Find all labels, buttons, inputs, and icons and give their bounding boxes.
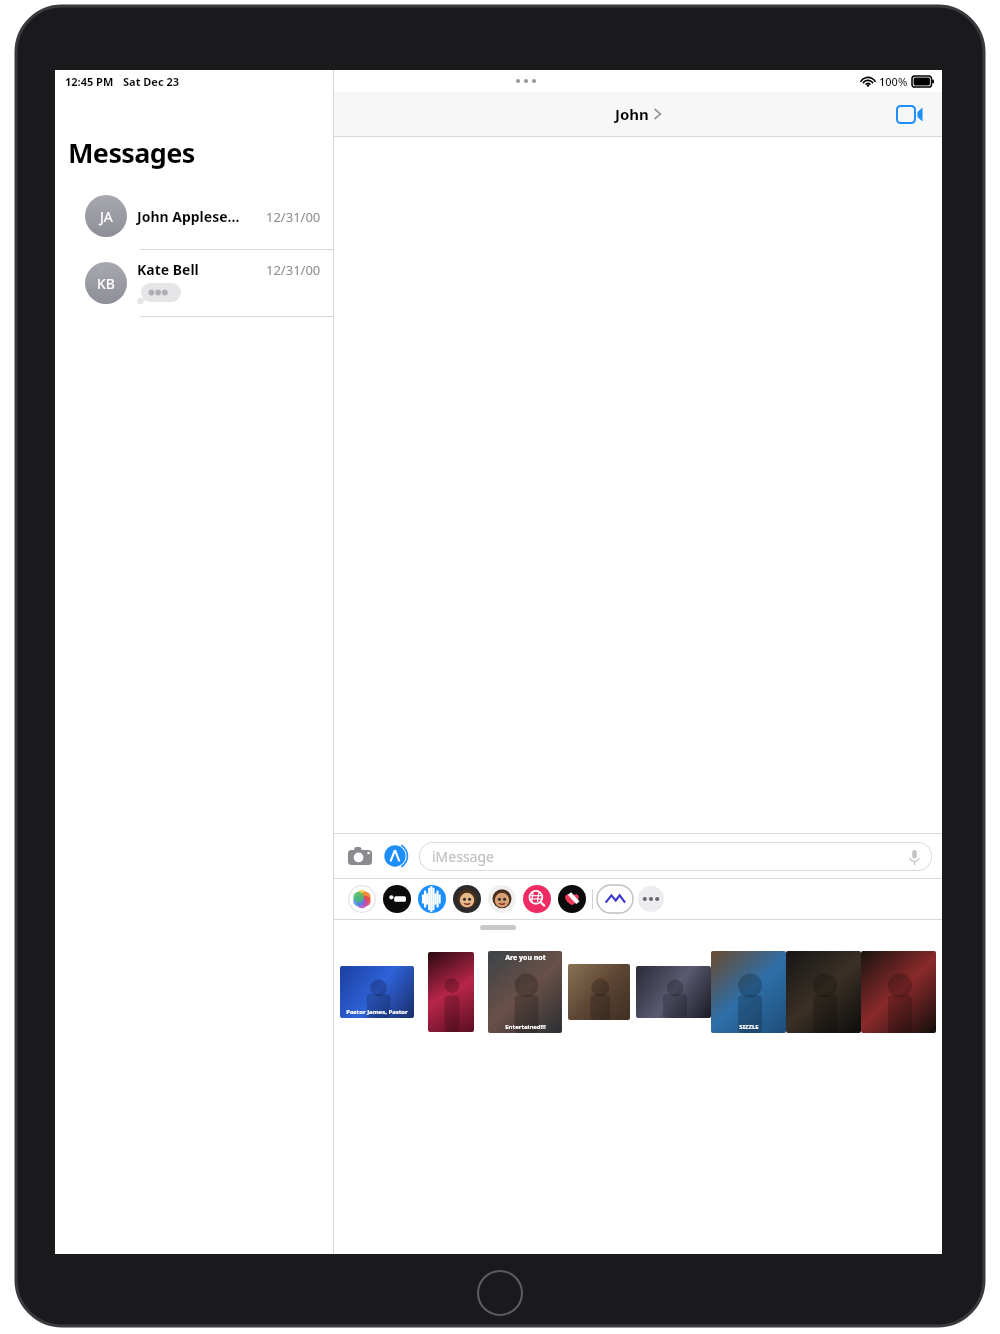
staticText: 12/31/00 [266,261,321,279]
staticText: Are you not [505,953,546,963]
staticText: Pastor James, Pastor James [340,1008,414,1016]
button[interactable]: Mountain app [597,885,633,913]
staticText: John Applese... [137,207,266,226]
staticText: 100% [879,74,908,89]
staticText: JA [100,207,113,226]
button[interactable]: Dictate [905,848,923,866]
staticText: Entertained!!! [505,1023,546,1031]
staticText: KB [97,274,115,293]
staticText: Kate Bell [137,260,266,279]
button[interactable]: SIZZLE [711,951,786,1033]
button[interactable]: Apple Cash [383,885,411,913]
staticText: 12/31/00 [266,208,321,226]
staticText: John [615,104,649,124]
button[interactable]: Pastor James, Pastor James [340,966,414,1018]
staticText: iMessage [432,847,494,866]
staticText: SIZZLE [739,1023,759,1031]
button[interactable]: Are you not [488,951,562,1033]
staticText: Messages [68,134,195,171]
button[interactable]: Memoji [453,885,481,913]
button[interactable]: More apps [638,886,664,912]
button[interactable] [636,966,711,1018]
button[interactable]: Digital Touch [558,885,586,913]
button[interactable]: Home [477,1270,523,1316]
button[interactable]: Multitasking [513,74,539,88]
staticText: 12:45 PM [65,74,114,89]
button[interactable] [568,964,630,1020]
button[interactable]: John [615,104,661,124]
button[interactable]: JA [55,183,333,249]
button[interactable]: #images [523,885,551,913]
button[interactable]: Camera [344,840,376,872]
button[interactable]: Memoji Stickers [488,885,516,913]
button[interactable]: Photos [348,885,376,913]
button[interactable]: FaceTime video call [892,96,928,132]
button[interactable]: iMessage [419,842,932,871]
button[interactable]: iMessage Apps [380,840,412,872]
staticText: Sat Dec 23 [123,74,180,89]
button[interactable] [428,952,474,1032]
button[interactable]: KB [55,250,333,316]
button[interactable] [786,951,861,1033]
button[interactable] [861,951,936,1033]
button[interactable]: Audio Message [418,885,446,913]
